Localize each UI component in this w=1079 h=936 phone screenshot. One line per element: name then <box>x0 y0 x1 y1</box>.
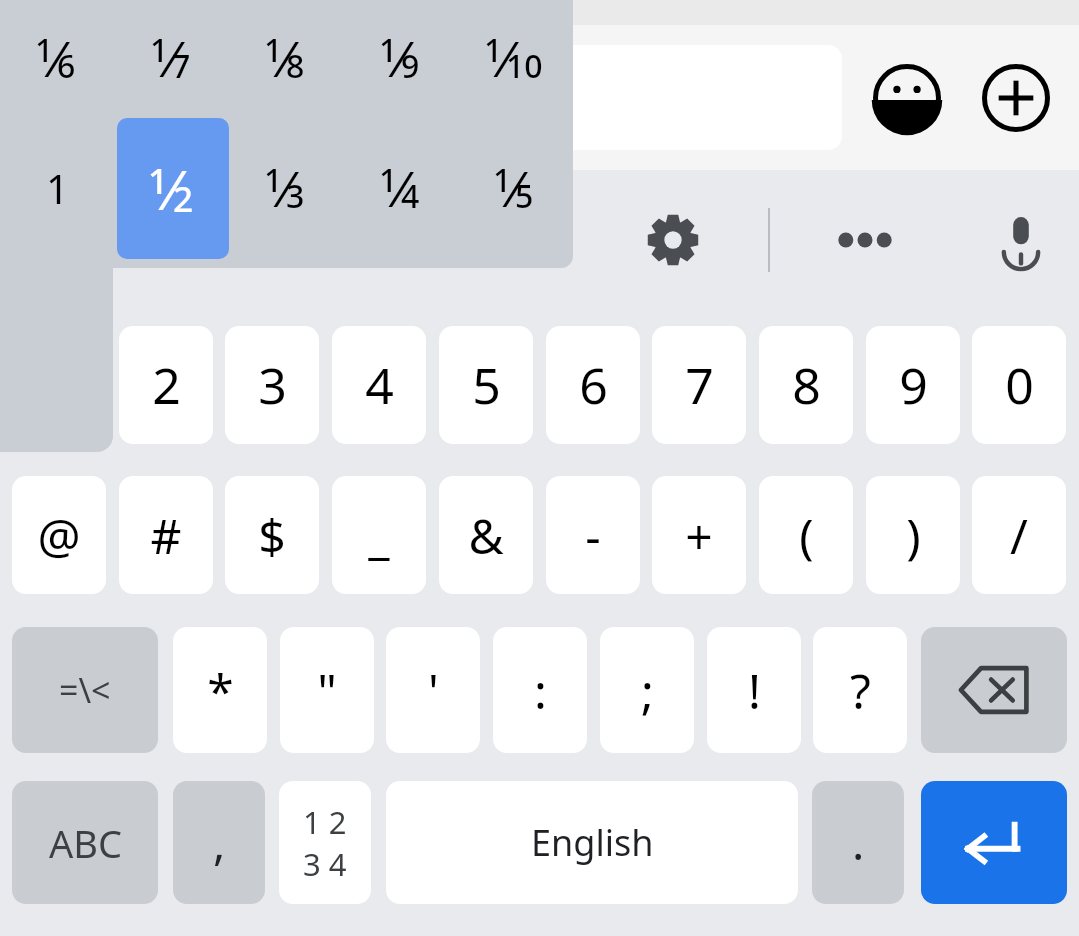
button[interactable]: / <box>972 476 1066 594</box>
staticText: . <box>852 811 865 874</box>
button[interactable]: Enter <box>921 781 1067 904</box>
button[interactable]: 1 <box>115 0 230 116</box>
button[interactable]: 1 <box>344 116 459 260</box>
staticText: 1 <box>264 28 283 72</box>
button[interactable]: - <box>546 476 640 594</box>
staticText: ? <box>850 658 871 723</box>
button[interactable]: " <box>280 627 374 753</box>
staticText: ABC <box>49 817 122 869</box>
staticText: 8 <box>286 44 305 88</box>
staticText: ; <box>641 658 654 723</box>
staticText: ⁄ <box>503 24 510 92</box>
staticText: ⁄ <box>398 24 405 92</box>
staticText: ( <box>799 503 814 568</box>
staticText: ⁄ <box>169 24 176 92</box>
button[interactable]: 5 <box>439 326 533 444</box>
button[interactable]: ( <box>759 476 853 594</box>
button[interactable]: ' <box>386 627 480 753</box>
staticText: 1 <box>150 28 169 72</box>
staticText: 1 <box>264 158 283 202</box>
button[interactable]: ! <box>707 627 801 753</box>
button[interactable]: Numbers <box>279 781 371 904</box>
staticText: 7 <box>172 44 191 88</box>
button[interactable]: 1 <box>0 116 115 260</box>
button[interactable]: ; <box>600 627 694 753</box>
button[interactable]: Voice input <box>976 195 1066 285</box>
button[interactable]: English <box>386 781 798 904</box>
staticText: " <box>317 658 337 723</box>
button[interactable]: 8 <box>759 326 853 444</box>
staticText: * <box>207 658 234 723</box>
button[interactable]: 3 <box>225 326 319 444</box>
button[interactable]: & <box>439 476 533 594</box>
button[interactable]: Emoji <box>865 56 949 140</box>
staticText: 4 <box>401 174 420 218</box>
staticText: + <box>685 503 713 568</box>
button[interactable]: 1 <box>229 0 344 116</box>
button[interactable]: 0 <box>972 326 1066 444</box>
button[interactable]: More options <box>820 195 910 285</box>
button[interactable]: ABC <box>12 781 158 904</box>
staticText: 2 <box>152 351 181 419</box>
button[interactable]: : <box>493 627 587 753</box>
staticText: 1 <box>46 161 69 215</box>
staticText: 6 <box>579 351 608 419</box>
button[interactable]: 1 <box>117 118 229 259</box>
button[interactable]: Add <box>974 56 1058 140</box>
staticText: 1 2 <box>303 801 347 843</box>
button[interactable]: $ <box>225 476 319 594</box>
staticText: 2 <box>173 174 194 222</box>
button[interactable]: 9 <box>866 326 960 444</box>
button[interactable]: 1 <box>458 116 573 260</box>
staticText: 5 <box>472 351 501 419</box>
button[interactable]: 1 <box>458 0 573 116</box>
staticText: 8 <box>792 351 821 419</box>
staticText: 3 <box>258 351 287 419</box>
staticText: ⁄ <box>169 151 177 226</box>
staticText: 3 <box>286 174 305 218</box>
button[interactable]: # <box>119 476 213 594</box>
button[interactable]: , <box>173 781 265 904</box>
staticText: 1 <box>379 158 398 202</box>
staticText: 1 <box>148 156 169 204</box>
staticText: - <box>585 503 601 568</box>
button[interactable]: _ <box>332 476 426 594</box>
staticText: # <box>150 503 182 568</box>
staticText: ' <box>428 658 439 723</box>
staticText: ! <box>748 658 761 723</box>
staticText: 10 <box>506 44 543 88</box>
staticText: 1 <box>379 28 398 72</box>
button[interactable] <box>0 45 842 150</box>
staticText: ⁄ <box>512 154 519 222</box>
button[interactable]: 6 <box>546 326 640 444</box>
button[interactable]: Backspace <box>921 627 1067 753</box>
staticText: / <box>1010 503 1028 568</box>
staticText: $ <box>258 503 286 568</box>
button[interactable]: 7 <box>652 326 746 444</box>
staticText: & <box>468 503 504 568</box>
staticText: ⁄ <box>283 154 290 222</box>
button[interactable]: ? <box>813 627 907 753</box>
button[interactable]: 1 <box>229 116 344 260</box>
button[interactable]: 2 <box>119 326 213 444</box>
button[interactable]: 1 <box>344 0 459 116</box>
staticText: 9 <box>899 351 928 419</box>
button[interactable]: =\< <box>12 627 158 753</box>
button[interactable]: . <box>812 781 904 904</box>
button[interactable]: 4 <box>332 326 426 444</box>
button[interactable]: 1 <box>0 0 115 116</box>
staticText: =\< <box>59 667 111 713</box>
staticText: ⁄ <box>283 24 290 92</box>
staticText: 6 <box>57 44 76 88</box>
staticText: 3 4 <box>303 843 347 885</box>
staticText: ) <box>906 503 921 568</box>
button[interactable]: + <box>652 476 746 594</box>
staticText: 9 <box>401 44 420 88</box>
button[interactable]: @ <box>12 476 106 594</box>
staticText: : <box>534 658 547 723</box>
button[interactable]: * <box>173 627 267 753</box>
button[interactable]: ) <box>866 476 960 594</box>
staticText: 1 <box>493 158 512 202</box>
button[interactable]: Settings <box>628 195 718 285</box>
